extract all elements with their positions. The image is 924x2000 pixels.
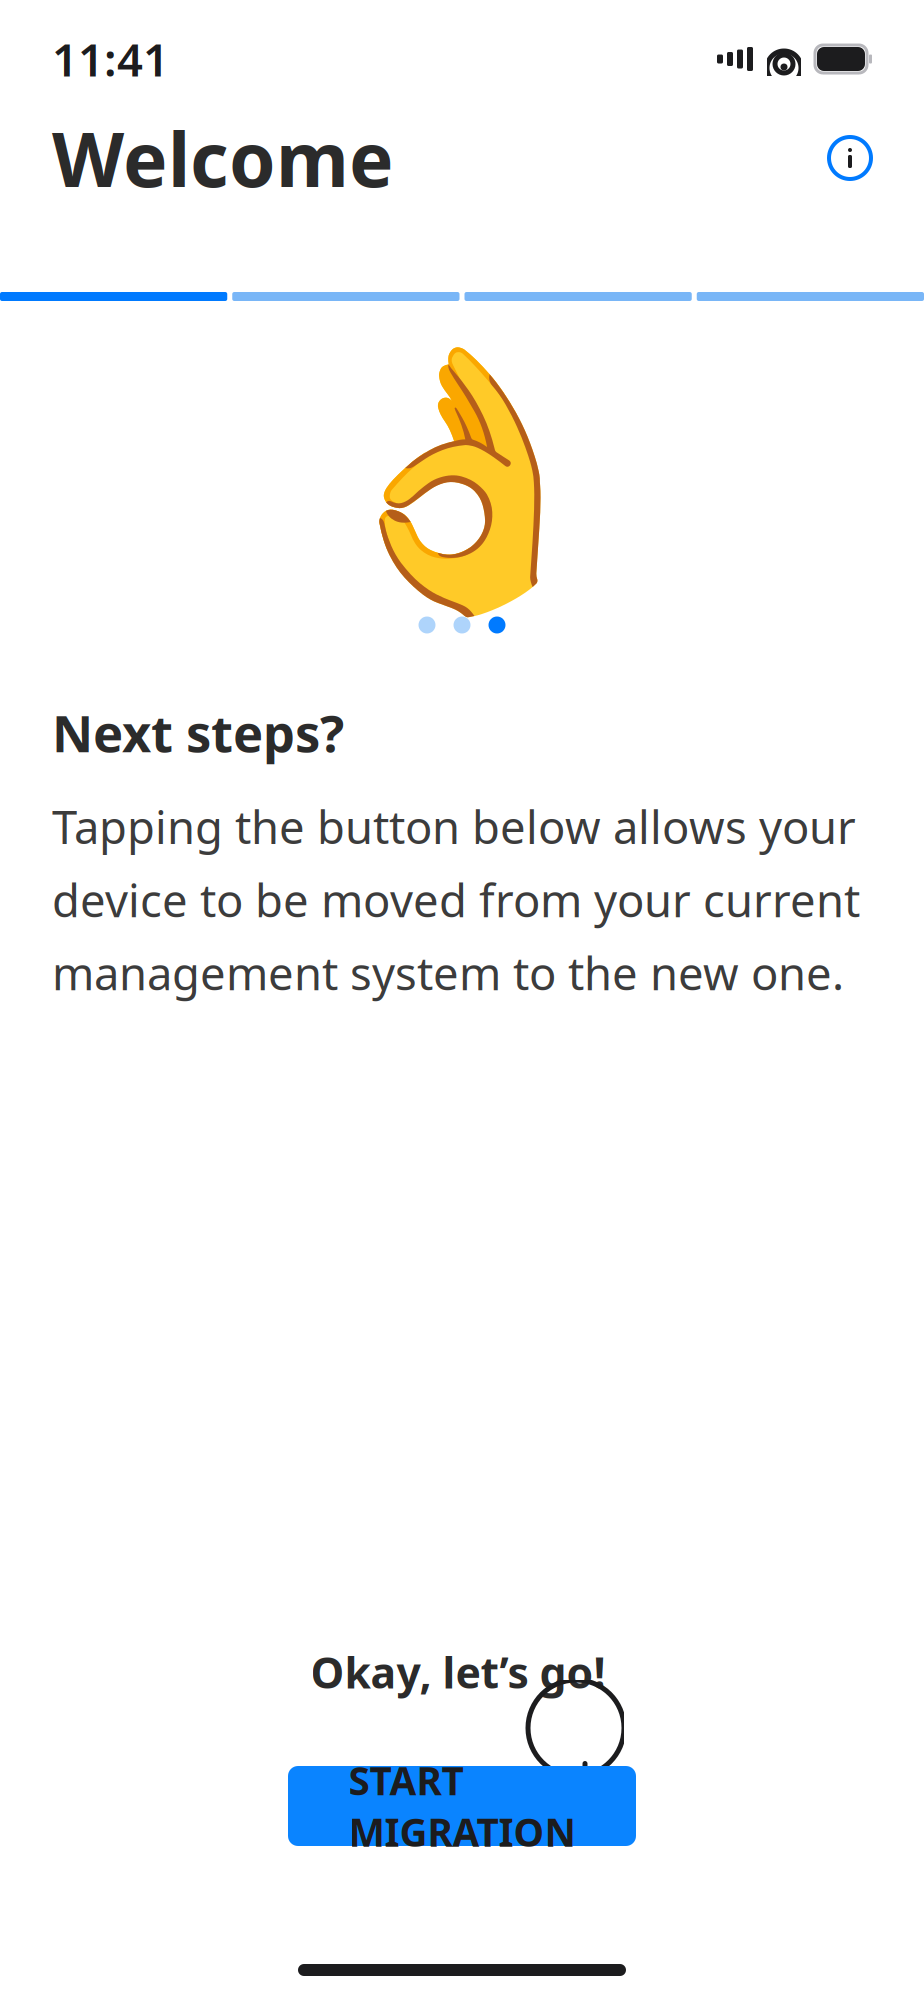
staticText: Okay, let’s go! <box>310 1644 605 1700</box>
button[interactable]: Information <box>820 128 880 188</box>
staticText: Tapping the button below allows your dev… <box>52 796 860 1003</box>
staticText: 11:41 <box>52 29 169 89</box>
staticText: 👌 <box>304 335 619 625</box>
staticText: Next steps? <box>52 699 344 766</box>
staticText: Welcome <box>52 108 394 208</box>
button[interactable]: START MIGRATION <box>288 1766 636 1846</box>
staticText: START MIGRATION <box>348 1755 575 1857</box>
